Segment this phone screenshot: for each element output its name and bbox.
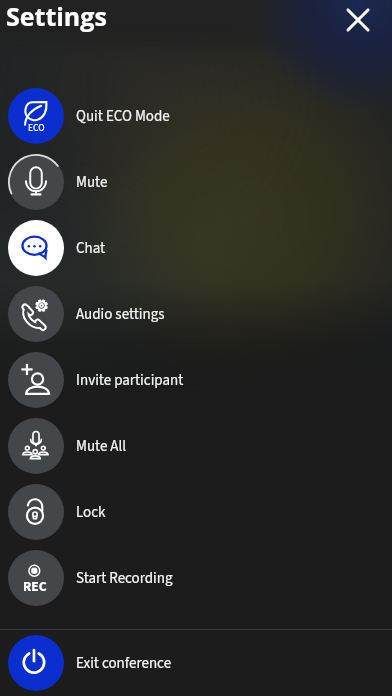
button[interactable]: Mute All bbox=[0, 413, 392, 479]
button[interactable]: Mute bbox=[0, 149, 392, 215]
button[interactable]: ECO bbox=[0, 83, 392, 149]
staticText: Quit ECO Mode bbox=[76, 106, 170, 127]
staticText: Chat bbox=[76, 238, 106, 259]
staticText: Start Recording bbox=[76, 568, 173, 589]
button[interactable]: Audio settings bbox=[0, 281, 392, 347]
staticText: Exit conference bbox=[76, 653, 172, 674]
button[interactable]: Chat bbox=[0, 215, 392, 281]
button[interactable]: REC bbox=[0, 545, 392, 611]
staticText: REC bbox=[23, 577, 47, 596]
button[interactable]: Invite participant bbox=[0, 347, 392, 413]
staticText: Mute bbox=[76, 172, 108, 193]
staticText: Invite participant bbox=[76, 370, 184, 391]
staticText: ECO bbox=[28, 121, 45, 135]
staticText: Audio settings bbox=[76, 304, 165, 325]
button[interactable]: Lock bbox=[0, 479, 392, 545]
button[interactable]: Exit conference bbox=[0, 630, 392, 696]
button[interactable]: Close bbox=[338, 0, 378, 40]
staticText: Settings bbox=[6, 0, 107, 33]
staticText: Mute All bbox=[76, 436, 127, 457]
staticText: Lock bbox=[76, 502, 106, 523]
